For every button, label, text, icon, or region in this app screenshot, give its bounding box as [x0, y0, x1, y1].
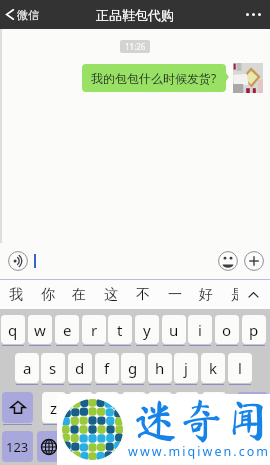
button[interactable]: u	[162, 315, 186, 344]
button[interactable]: c	[95, 392, 119, 423]
staticText: 我的包包什么时候发货?	[91, 70, 217, 86]
button[interactable]: h	[148, 353, 172, 383]
staticText: w	[34, 320, 46, 340]
staticText: x	[77, 398, 85, 418]
staticText: g	[128, 358, 138, 378]
staticText: i	[198, 320, 202, 340]
button[interactable]: Voice message	[8, 251, 28, 271]
button[interactable]: Comma	[178, 431, 208, 462]
staticText: o	[222, 320, 232, 340]
staticText: m	[207, 398, 222, 418]
staticText: e	[63, 320, 72, 340]
button[interactable]: 在	[63, 280, 95, 309]
staticText: a	[23, 358, 32, 378]
staticText: f	[104, 358, 110, 378]
staticText: r	[91, 320, 98, 340]
staticText: 11:26	[125, 41, 146, 52]
staticText: 你	[41, 286, 55, 304]
staticText: t	[117, 320, 123, 340]
button[interactable]: p	[242, 315, 266, 344]
button[interactable]: y	[135, 315, 159, 344]
button[interactable]: x	[69, 392, 93, 423]
button[interactable]: More functions	[244, 251, 264, 271]
button[interactable]: e	[55, 315, 79, 344]
staticText: y	[143, 320, 151, 340]
staticText: d	[75, 358, 85, 378]
staticText: ,	[191, 437, 196, 457]
staticText: 在	[72, 286, 86, 304]
button[interactable]: j	[174, 353, 198, 383]
staticText: q	[8, 320, 18, 340]
button[interactable]: z	[42, 392, 66, 423]
button[interactable]: w	[28, 315, 52, 344]
staticText: n	[182, 398, 192, 418]
staticText: 不	[136, 286, 150, 304]
button[interactable]: t	[108, 315, 132, 344]
button[interactable]: Shift	[2, 392, 33, 423]
staticText: 好	[199, 286, 213, 304]
button[interactable]: Collapse suggestions	[241, 280, 266, 309]
button[interactable]: n	[175, 392, 199, 423]
staticText: j	[184, 358, 188, 378]
staticText: 是	[231, 286, 245, 304]
staticText: p	[249, 320, 259, 340]
button[interactable]: Backspace	[237, 392, 268, 423]
button[interactable]: s	[41, 353, 65, 383]
staticText: z	[50, 398, 58, 418]
button[interactable]: l	[228, 353, 252, 383]
button[interactable]: 微信	[6, 0, 39, 29]
button[interactable]: k	[201, 353, 225, 383]
button[interactable]: 不	[127, 280, 159, 309]
button[interactable]: g	[121, 353, 145, 383]
staticText: u	[169, 320, 179, 340]
staticText: 迷奇闻	[133, 397, 270, 442]
button[interactable]: Enter	[212, 431, 267, 462]
button[interactable]: 是	[222, 280, 254, 309]
button[interactable]: 我的包包什么时候发货?	[82, 64, 226, 92]
staticText: c	[103, 398, 111, 418]
button[interactable]: Space	[64, 431, 174, 462]
button[interactable]: Emoji	[218, 251, 238, 271]
button[interactable]: m	[202, 392, 226, 423]
button[interactable]: i	[188, 315, 212, 344]
staticText: ↵	[233, 438, 246, 455]
staticText: s	[49, 358, 57, 378]
button[interactable]: 你	[32, 280, 64, 309]
button[interactable]: 一	[159, 280, 191, 309]
staticText: k	[209, 358, 218, 378]
button[interactable]: 好	[190, 280, 222, 309]
staticText: 正品鞋包代购	[96, 7, 174, 23]
button[interactable]	[233, 63, 263, 93]
button[interactable]: Change language	[37, 431, 61, 462]
button[interactable]: q	[1, 315, 25, 344]
button[interactable]: f	[95, 353, 119, 383]
staticText: 微信	[17, 8, 39, 22]
staticText: h	[155, 358, 165, 378]
staticText: 123	[6, 438, 29, 456]
button[interactable]: o	[215, 315, 239, 344]
button[interactable]: b	[148, 392, 172, 423]
staticText: 这	[104, 286, 118, 304]
staticText: 一	[168, 286, 182, 304]
button[interactable]: 我	[0, 280, 32, 309]
button[interactable]: v	[122, 392, 146, 423]
staticText: b	[155, 398, 165, 418]
staticText: l	[238, 358, 242, 378]
button[interactable]: a	[15, 353, 39, 383]
button[interactable]: Numbers	[2, 431, 33, 462]
button[interactable]: More options	[246, 0, 261, 29]
button[interactable]: d	[68, 353, 92, 383]
button[interactable]: r	[82, 315, 106, 344]
staticText: www.miqiwen.com	[128, 443, 270, 460]
staticText: 我	[9, 286, 23, 304]
button[interactable]: 这	[95, 280, 127, 309]
